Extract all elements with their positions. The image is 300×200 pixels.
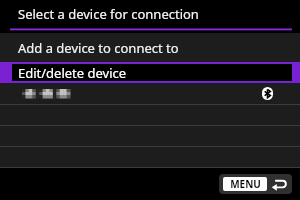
- button[interactable]: Bluetooth paired: [0, 83, 300, 104]
- button[interactable]: MENU, go back: [219, 174, 292, 194]
- staticText: Add a device to connect to: [18, 39, 179, 57]
- staticText: Select a device for connection: [18, 5, 199, 23]
- other: Bluetooth paired: [262, 87, 273, 100]
- staticText: MENU: [230, 177, 261, 191]
- staticText: Edit/delete device: [18, 64, 127, 81]
- button[interactable]: Edit/delete device: [0, 62, 300, 83]
- button[interactable]: Add a device to connect to: [0, 33, 300, 62]
